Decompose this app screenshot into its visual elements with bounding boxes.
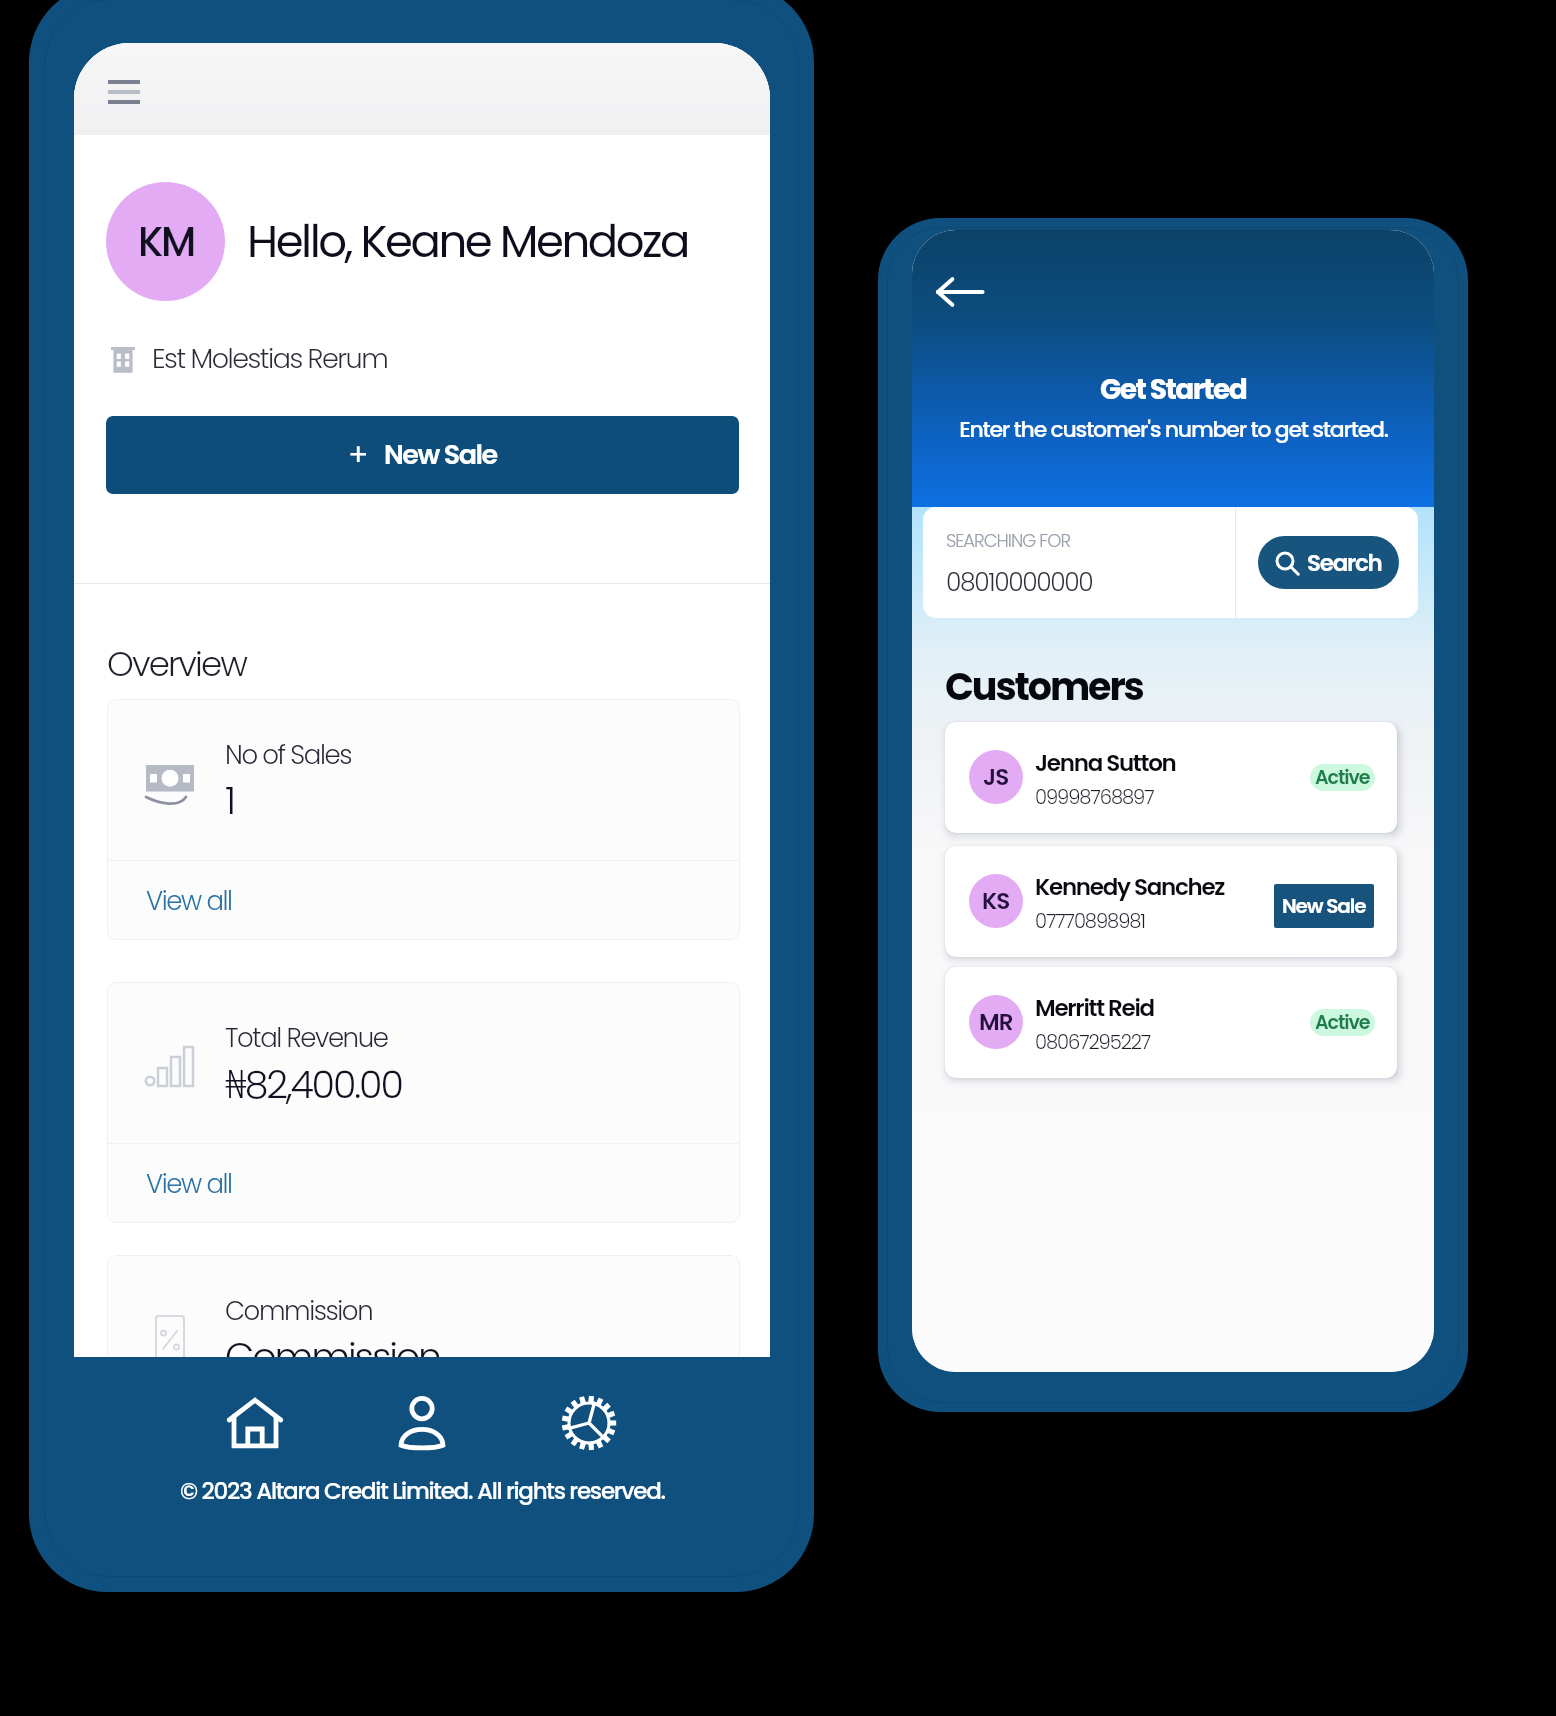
- staticText: Est Molestias Rerum: [152, 340, 388, 378]
- button[interactable]: Total Revenue: [107, 982, 740, 1223]
- staticText: JS: [983, 761, 1009, 793]
- staticText: New Sale: [1282, 892, 1366, 920]
- staticText: +: [348, 434, 368, 476]
- button[interactable]: Home: [217, 1385, 293, 1461]
- staticText: Get Started: [1100, 370, 1247, 409]
- staticText: 07770898981: [1035, 908, 1145, 935]
- staticText: 08010000000: [946, 565, 1093, 600]
- button[interactable]: Menu: [80, 51, 142, 113]
- staticText: Overview: [107, 640, 247, 688]
- staticText: Active: [1315, 764, 1370, 791]
- staticText: 08067295227: [1035, 1029, 1151, 1056]
- button[interactable]: Search: [1258, 536, 1399, 589]
- staticText: View all: [146, 1166, 232, 1202]
- button[interactable]: +: [106, 416, 739, 494]
- staticText: Hello, Keane Mendoza: [247, 210, 688, 273]
- staticText: © 2023 Altara Credit Limited. All rights…: [180, 1475, 665, 1507]
- staticText: No of Sales: [225, 737, 351, 773]
- button[interactable]: Settings: [551, 1385, 627, 1461]
- staticText: MR: [979, 1006, 1013, 1038]
- button[interactable]: JS: [945, 722, 1397, 833]
- button[interactable]: No of Sales: [107, 699, 740, 940]
- staticText: KM: [138, 214, 194, 270]
- button[interactable]: MR: [945, 967, 1397, 1078]
- staticText: Merritt Reid: [1035, 992, 1154, 1024]
- staticText: ₦82,400.00: [225, 1057, 402, 1111]
- staticText: Search: [1307, 547, 1382, 579]
- button[interactable]: Back: [928, 260, 992, 324]
- staticText: Active: [1315, 1009, 1370, 1036]
- staticText: Commission: [225, 1330, 441, 1383]
- staticText: SEARCHING FOR: [946, 528, 1070, 553]
- staticText: View all: [146, 1439, 232, 1474]
- staticText: Enter the customer's number to get start…: [959, 414, 1388, 445]
- button[interactable]: Profile: [384, 1385, 460, 1461]
- staticText: KS: [982, 885, 1010, 917]
- button[interactable]: KS: [945, 846, 1397, 957]
- staticText: New Sale: [384, 436, 497, 474]
- staticText: Total Revenue: [225, 1020, 388, 1056]
- button[interactable]: New Sale: [1274, 884, 1374, 928]
- staticText: Customers: [945, 660, 1143, 713]
- staticText: Jenna Sutton: [1035, 747, 1176, 779]
- staticText: 1: [225, 774, 235, 827]
- staticText: View all: [146, 883, 232, 919]
- staticText: 09998768897: [1035, 784, 1154, 811]
- button[interactable]: Commission: [107, 1255, 740, 1474]
- staticText: Kennedy Sanchez: [1035, 871, 1225, 903]
- staticText: Commission: [225, 1293, 373, 1329]
